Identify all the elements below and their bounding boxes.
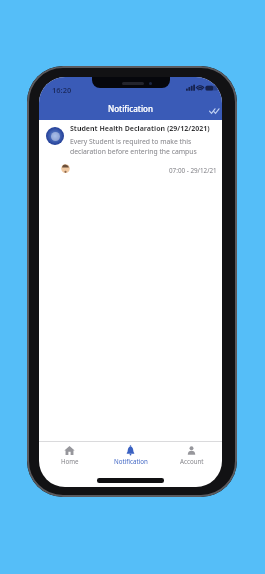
staticText: Student Health Declaration (29/12/2021) bbox=[70, 124, 210, 134]
staticText: 16:20 bbox=[52, 85, 72, 95]
button[interactable]: Account bbox=[161, 442, 222, 487]
staticText: Home bbox=[61, 457, 79, 465]
staticText: Notification bbox=[114, 457, 148, 465]
button[interactable] bbox=[209, 107, 221, 117]
staticText: Notification bbox=[108, 103, 153, 114]
button[interactable]: Home bbox=[39, 442, 100, 487]
button[interactable]: Notification bbox=[100, 442, 161, 487]
staticText: 07:00 - 29/12/21 bbox=[169, 166, 217, 175]
staticText: Account bbox=[180, 457, 204, 465]
button[interactable]: Student Health Declaration (29/12/2021) bbox=[39, 120, 222, 175]
staticText: Every Student is required to make this d… bbox=[70, 137, 197, 156]
